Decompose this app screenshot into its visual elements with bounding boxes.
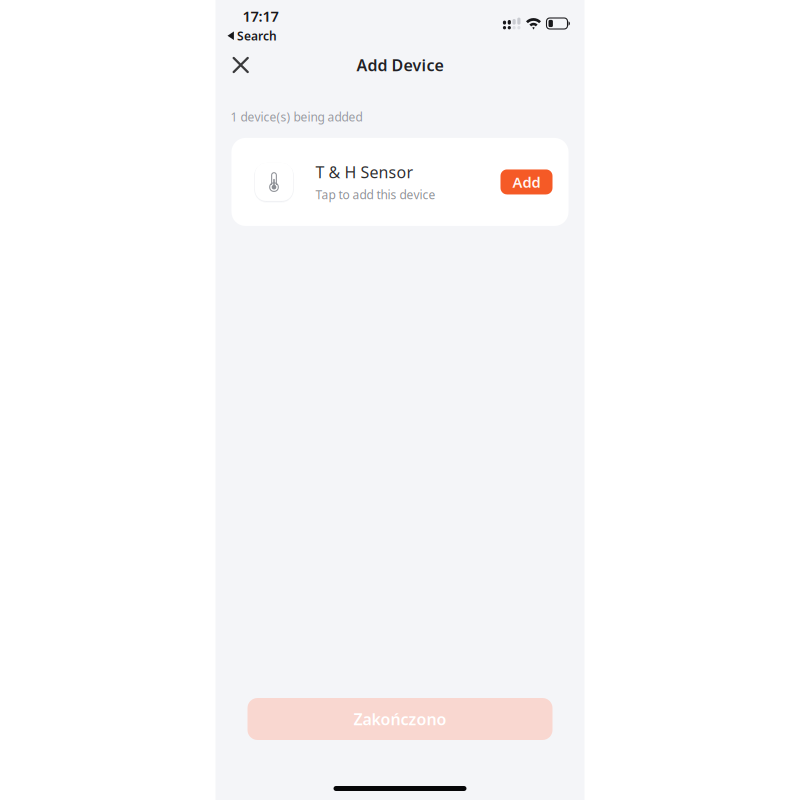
staticText: Add xyxy=(512,172,540,192)
staticText: Add Device xyxy=(356,54,443,76)
staticText: 17:17 xyxy=(242,6,278,26)
staticText: Tap to add this device xyxy=(315,187,435,202)
staticText: Search xyxy=(237,28,277,44)
button[interactable]: Zakończono xyxy=(247,698,552,740)
button[interactable]: T & H Sensor xyxy=(231,138,568,226)
staticText: T & H Sensor xyxy=(315,161,413,182)
button[interactable]: Close xyxy=(223,48,258,82)
staticText: 1 device(s) being added xyxy=(230,109,362,125)
button[interactable]: Add xyxy=(500,169,552,194)
staticText: Zakończono xyxy=(353,708,446,730)
